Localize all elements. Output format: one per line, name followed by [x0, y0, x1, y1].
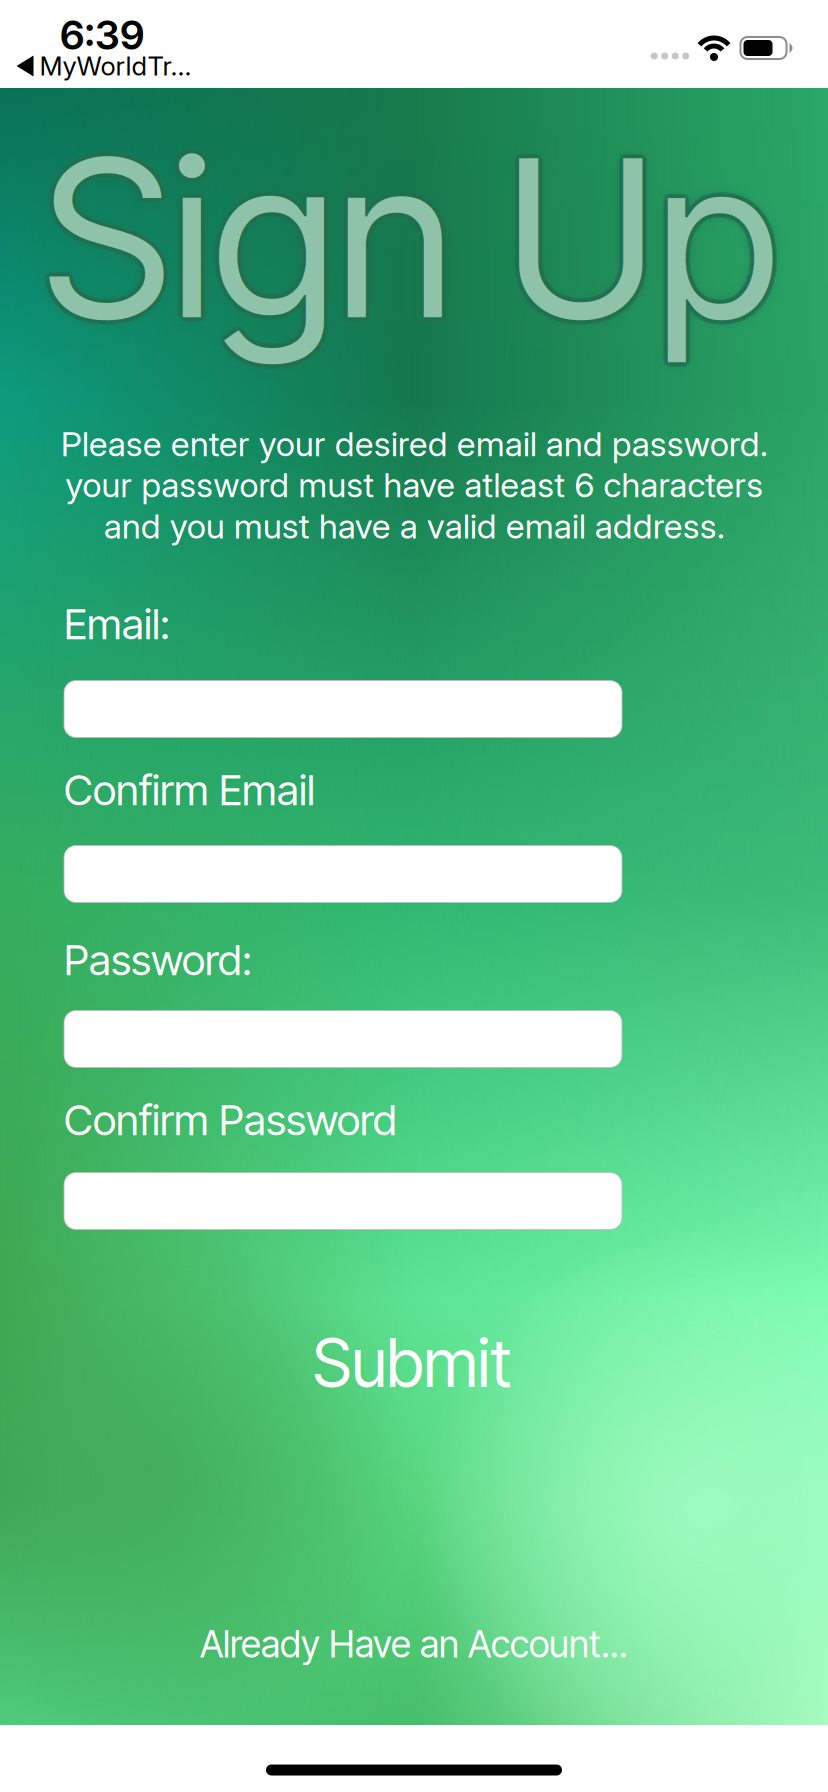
- staticText: Already Have an Account...: [200, 1622, 628, 1666]
- staticText: MyWorldTr...: [39, 50, 191, 82]
- staticText: Password:: [64, 935, 252, 985]
- staticText: Sign Up: [45, 103, 781, 367]
- button[interactable]: Confirm Password: [64, 1172, 622, 1229]
- staticText: Sign Up: [42, 102, 778, 365]
- staticText: Sign Up: [37, 106, 773, 370]
- staticText: Sign Up: [42, 106, 778, 370]
- staticText: Please enter your desired email and pass…: [60, 423, 767, 547]
- button[interactable]: Back to MyWorldTr: [16, 50, 191, 82]
- staticText: Sign Up: [42, 111, 778, 374]
- button[interactable]: Submit: [312, 1323, 511, 1403]
- staticText: Sign Up: [42, 106, 778, 370]
- button[interactable]: Already Have an Account...: [200, 1622, 628, 1666]
- staticText: Submit: [312, 1323, 511, 1403]
- staticText: Confirm Password: [64, 1095, 397, 1145]
- staticText: Confirm Email: [64, 765, 315, 815]
- button[interactable]: Confirm Email: [64, 845, 622, 902]
- staticText: Sign Up: [39, 103, 775, 367]
- button[interactable]: Password: [64, 1010, 622, 1067]
- staticText: Email:: [64, 599, 170, 649]
- staticText: 6:39: [60, 11, 144, 59]
- button[interactable]: Email: [64, 680, 622, 737]
- staticText: Sign Up: [39, 109, 775, 373]
- staticText: Sign Up: [46, 106, 782, 370]
- staticText: Sign Up: [45, 109, 781, 373]
